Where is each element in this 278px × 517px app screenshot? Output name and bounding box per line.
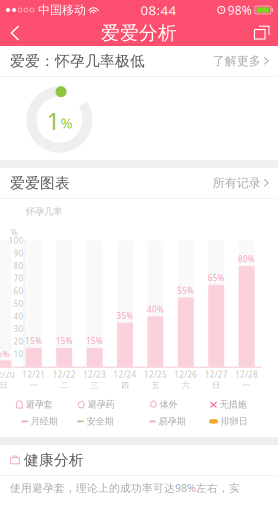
staticText: 12/23	[83, 369, 106, 380]
staticText: 健康分析	[24, 451, 84, 469]
staticText: 月经期	[30, 416, 57, 427]
staticText: 体外	[159, 399, 177, 410]
staticText: 80	[13, 261, 23, 271]
staticText: 60	[13, 286, 23, 296]
staticText: 70	[13, 273, 23, 284]
staticText: 98%	[228, 2, 252, 18]
staticText: 日	[212, 380, 220, 390]
staticText: 12/24	[113, 369, 136, 380]
staticText: 12/28	[235, 369, 258, 380]
staticText: 三	[91, 380, 99, 390]
button[interactable]: 爱爱：怀孕几率极低	[0, 46, 278, 76]
staticText: 100	[8, 235, 23, 246]
staticText: 易孕期	[158, 416, 185, 427]
staticText: 12/21	[22, 369, 45, 380]
staticText: 12/27	[205, 369, 228, 380]
staticText: 65%	[208, 273, 225, 283]
staticText: 无措施	[219, 399, 246, 410]
button[interactable]: 爱爱图表	[0, 168, 278, 198]
button[interactable]: Back	[0, 20, 30, 46]
staticText: 日	[0, 380, 7, 390]
staticText: 12/26	[174, 369, 197, 380]
staticText: 30	[13, 324, 23, 334]
staticText: 安全期	[86, 416, 113, 427]
staticText: 爱爱图表	[10, 174, 70, 192]
staticText: 15%	[25, 336, 42, 346]
staticText: 二	[60, 380, 68, 390]
button[interactable]: Share	[246, 20, 278, 46]
staticText: 爱爱：怀孕几率极低	[10, 52, 145, 70]
staticText: 08:44	[140, 1, 176, 19]
staticText: 35%	[116, 310, 133, 321]
staticText: 爱爱分析	[101, 21, 177, 44]
staticText: 中国移动	[38, 3, 86, 17]
staticText: 12/22	[53, 369, 76, 380]
staticText: 使用避孕套，理论上的成功率可达98%左右，实	[10, 481, 240, 495]
staticText: %	[60, 113, 72, 132]
staticText: 所有记录	[213, 176, 261, 190]
staticText: 10	[13, 349, 23, 359]
staticText: 四	[121, 380, 129, 390]
staticText: 5%	[0, 348, 9, 359]
staticText: 40%	[147, 304, 164, 315]
staticText: 40	[13, 311, 23, 322]
staticText: 一	[243, 380, 251, 390]
staticText: 90	[13, 248, 23, 259]
staticText: 12/25	[144, 369, 167, 380]
staticText: 15%	[56, 336, 73, 346]
staticText: 避孕药	[87, 399, 114, 410]
staticText: 避孕套	[25, 399, 52, 410]
staticText: 六	[182, 380, 190, 390]
staticText: 80%	[238, 254, 255, 264]
staticText: 一	[30, 380, 38, 390]
staticText: 怀孕几率	[26, 206, 62, 217]
staticText: 五	[151, 380, 159, 390]
staticText: 50	[13, 298, 23, 309]
staticText: 55%	[177, 285, 194, 296]
staticText: 排卵日	[220, 416, 247, 427]
staticText: %	[11, 227, 18, 238]
staticText: 了解更多	[213, 54, 261, 68]
staticText: 12/20	[0, 369, 15, 380]
staticText: 20	[13, 336, 23, 347]
staticText: 1	[46, 105, 60, 137]
staticText: 15%	[86, 336, 103, 346]
